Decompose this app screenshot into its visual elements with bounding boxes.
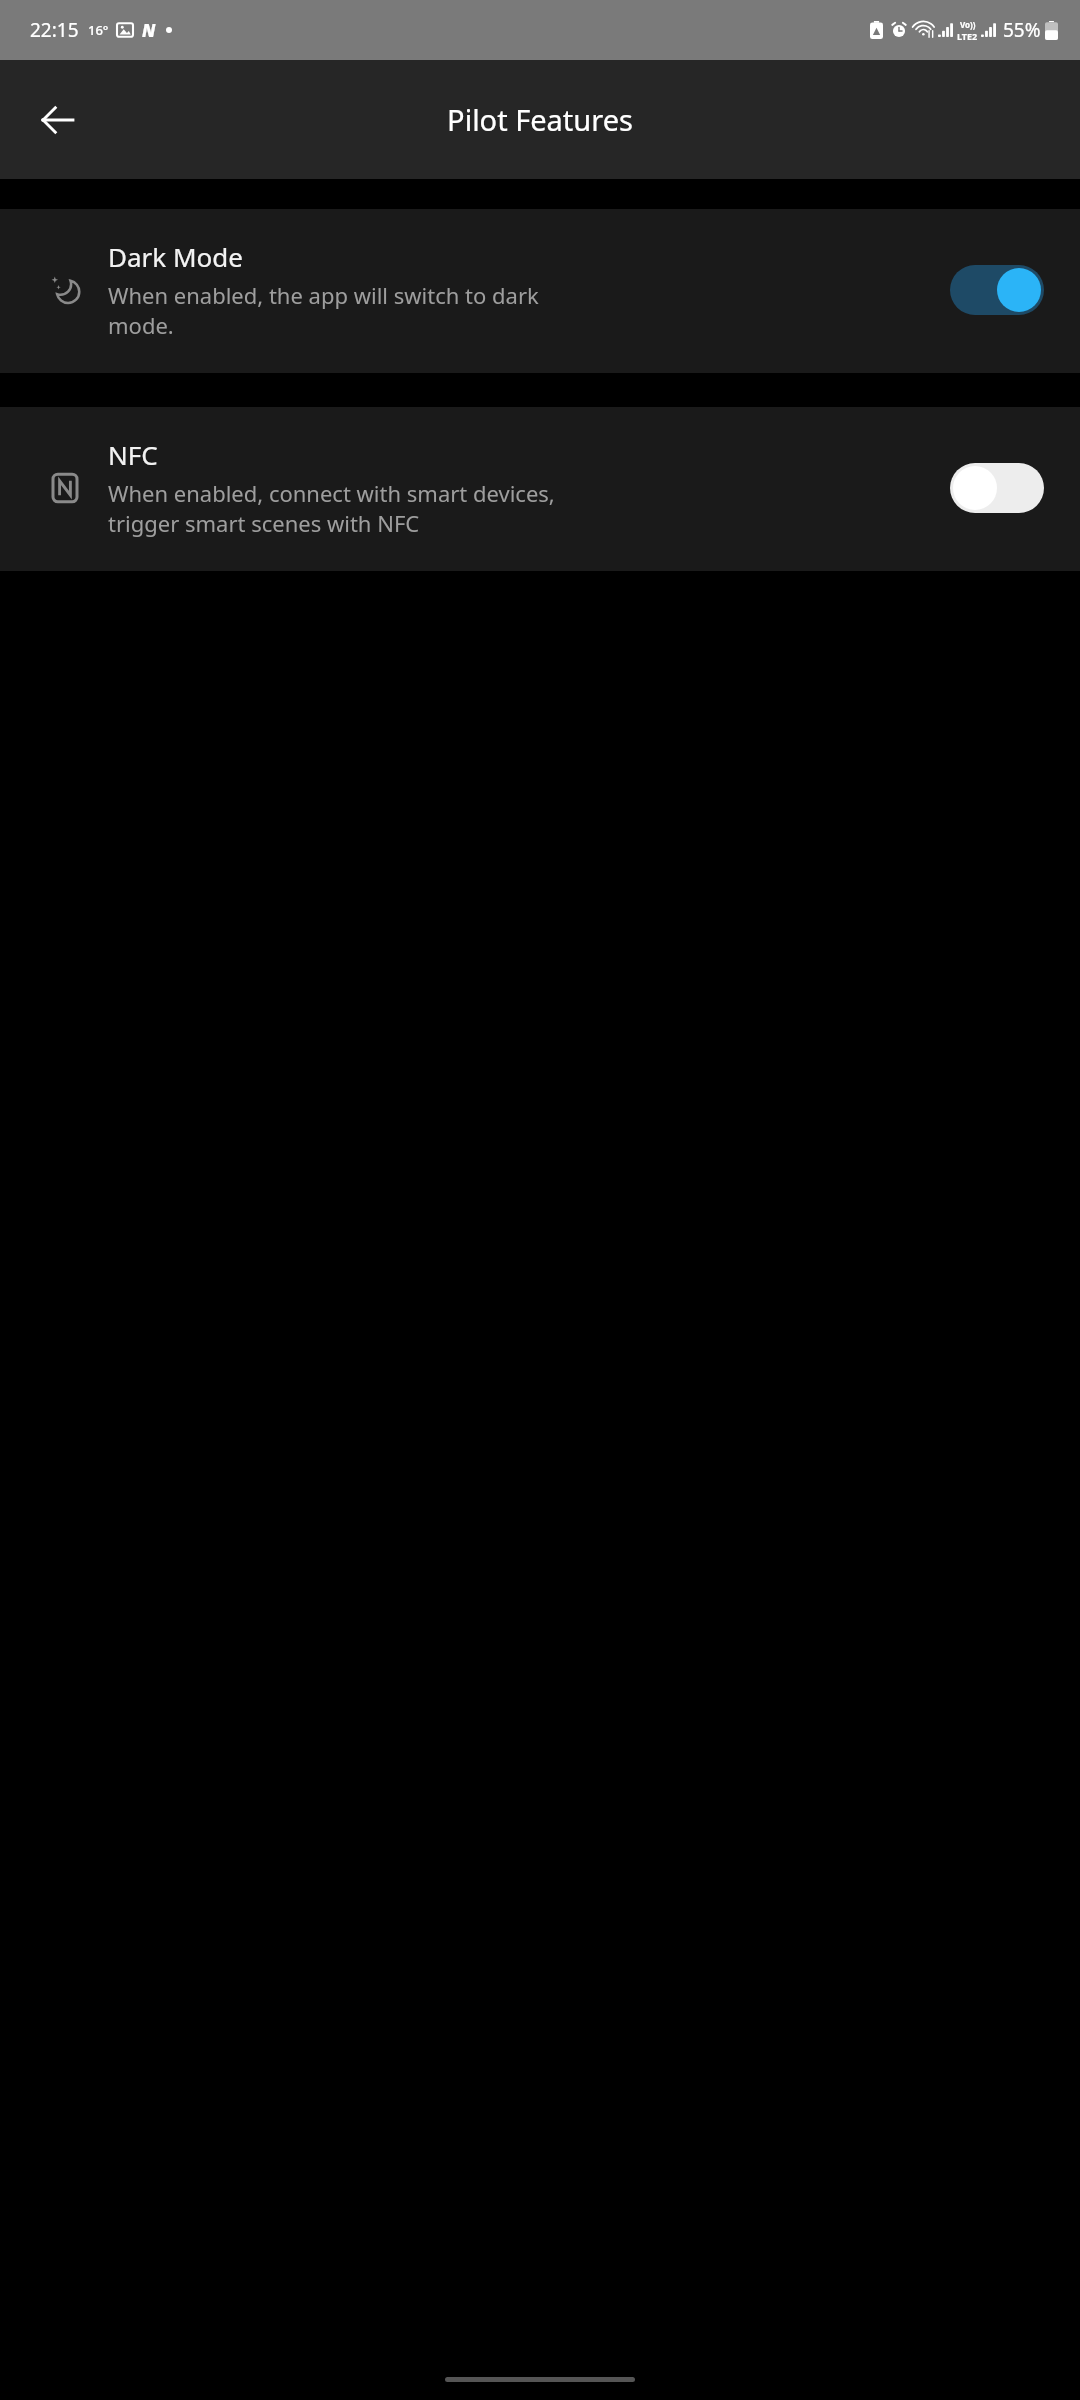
staticText: Vo)) [960, 19, 976, 30]
button[interactable]: On [950, 265, 1044, 315]
staticText: 22:15 [30, 17, 79, 43]
staticText: Pilot Features [447, 100, 633, 139]
staticText: When enabled, the app will switch to dar… [108, 280, 539, 341]
staticText: N [142, 19, 156, 42]
staticText: 16° [88, 21, 109, 39]
button[interactable]: Dark Mode [0, 209, 1080, 373]
button[interactable]: Off [950, 463, 1044, 513]
staticText: When enabled, connect with smart devices… [108, 478, 555, 539]
staticText: LTE2 [957, 30, 978, 42]
staticText: NFC [108, 437, 158, 472]
staticText: Dark Mode [108, 239, 243, 274]
button[interactable]: Back [22, 84, 94, 156]
staticText: 55% [1003, 17, 1041, 43]
button[interactable]: NFC [0, 407, 1080, 571]
